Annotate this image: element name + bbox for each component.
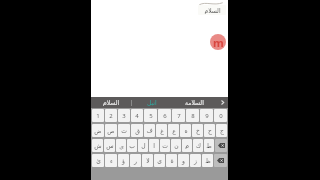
staticText: ق [135,127,140,134]
staticText: ع [172,127,176,134]
staticText: ة [170,157,174,164]
staticText: 0 [219,112,223,120]
button[interactable]: 6 [158,109,171,122]
staticText: ف [146,127,153,134]
staticText: 9 [205,112,209,120]
staticText: 4 [135,112,139,120]
button[interactable]: م [182,139,192,152]
staticText: ش [94,142,102,149]
staticText: ص [107,127,115,134]
staticText: ض [94,127,102,134]
staticText: ظ [205,157,211,164]
staticText: 3 [122,112,126,120]
button[interactable]: خ [192,124,203,137]
button[interactable]: ق [131,124,143,137]
staticText: 2 [109,112,113,120]
button[interactable]: و [178,154,189,167]
staticText: ء [110,157,113,164]
button[interactable]: ز [190,154,201,167]
button[interactable]: السلامة [172,97,216,108]
button[interactable]: ح [204,124,215,137]
staticText: ئ [96,157,101,164]
button[interactable]: ب [127,139,137,152]
button[interactable]: ل [138,139,148,152]
button[interactable]: ئ [92,154,104,167]
button[interactable]: ف [144,124,155,137]
button[interactable]: ش [92,139,103,152]
button[interactable]: 8 [186,109,199,122]
button[interactable]: Backspace [215,139,227,152]
staticText: ل [141,142,146,149]
button[interactable]: Contact avatar [210,34,226,50]
button[interactable]: ض [92,124,104,137]
staticText: ه [184,127,188,134]
staticText: و [182,157,185,164]
staticText: 7 [177,112,181,120]
button[interactable]: 0 [214,109,227,122]
button[interactable]: More suggestions [216,97,228,108]
button[interactable]: ن [171,139,181,152]
button[interactable]: ؤ [118,154,129,167]
button[interactable]: ء [105,154,117,167]
button[interactable]: ر [130,154,141,167]
button[interactable]: ى [154,154,165,167]
staticText: 6 [163,112,167,120]
staticText: ح [208,127,212,134]
button[interactable]: السلام [91,97,131,108]
staticText: السلامة [185,99,204,106]
button[interactable]: لا [142,154,153,167]
staticText: ز [194,157,197,164]
staticText: السلام [103,99,120,106]
staticText: 5 [149,112,153,120]
button[interactable]: ه [180,124,191,137]
staticText: ط [206,142,212,149]
staticText: m [213,35,224,50]
button[interactable]: ج [216,124,227,137]
button[interactable]: ة [166,154,177,167]
staticText: ت [162,142,168,149]
button[interactable]: Backspace [214,154,227,167]
button[interactable]: 2 [105,109,117,122]
button[interactable]: س [104,139,115,152]
button[interactable]: السلام [198,5,226,15]
staticText: السلام [204,7,221,14]
staticText: غ [160,127,164,134]
staticText: انبل [147,99,157,106]
button[interactable]: ث [118,124,130,137]
staticText: ج [220,127,224,134]
button[interactable]: غ [156,124,167,137]
button[interactable]: 4 [131,109,143,122]
button[interactable]: ا [149,139,159,152]
button[interactable]: 1 [92,109,104,122]
staticText: ن [174,142,179,149]
staticText: ر [134,157,137,164]
button[interactable]: ظ [202,154,213,167]
button[interactable]: ت [160,139,170,152]
staticText: لا [146,157,150,164]
button[interactable]: ط [204,139,214,152]
button[interactable]: 7 [172,109,185,122]
staticText: ك [196,142,201,149]
staticText: ث [121,127,127,134]
button[interactable]: 9 [200,109,213,122]
staticText: 8 [191,112,195,120]
staticText: ي [119,142,124,149]
button[interactable]: 5 [144,109,157,122]
button[interactable]: انبل [132,97,172,108]
staticText: خ [196,127,200,134]
button[interactable]: ص [105,124,117,137]
staticText: م [185,142,189,149]
button[interactable]: ك [193,139,203,152]
staticText: ى [157,157,162,164]
button[interactable]: 3 [118,109,130,122]
staticText: س [106,142,114,149]
staticText: ب [129,142,135,149]
button[interactable]: ع [168,124,179,137]
staticText: 1 [96,112,100,120]
staticText: ا [153,142,155,149]
button[interactable]: ي [116,139,126,152]
staticText: ؤ [122,157,125,164]
